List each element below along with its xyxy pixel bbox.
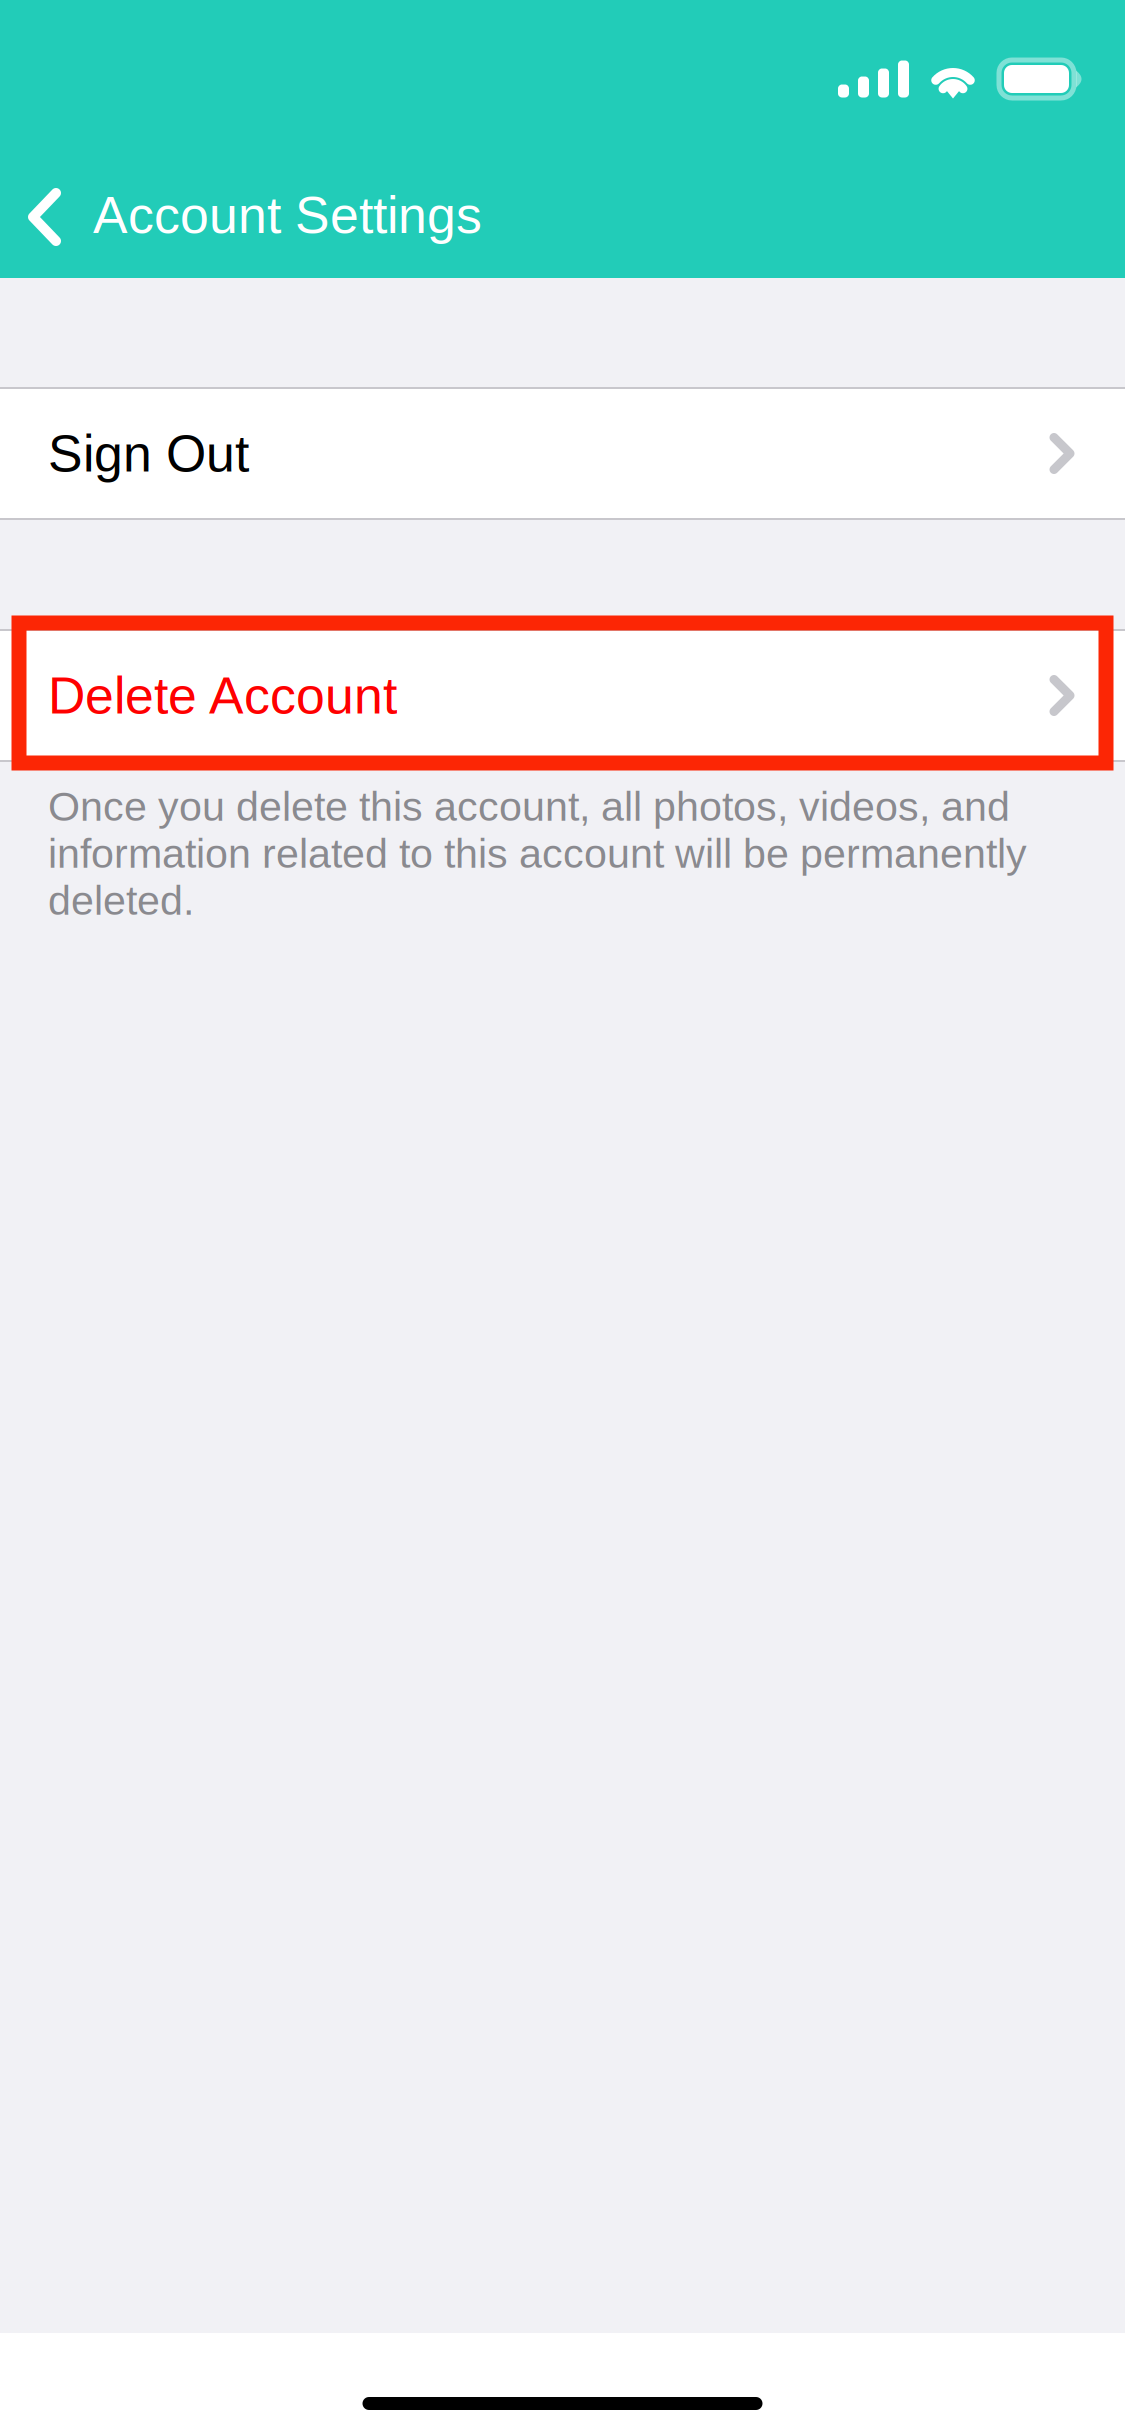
staticText: Account Settings: [93, 186, 482, 244]
button[interactable]: Sign Out: [0, 389, 1125, 518]
button[interactable]: Delete Account: [0, 631, 1125, 760]
staticText: Once you delete this account, all photos…: [48, 783, 1027, 924]
staticText: Delete Account: [48, 667, 397, 724]
staticText: Sign Out: [48, 425, 249, 482]
button[interactable]: Back: [0, 166, 93, 264]
